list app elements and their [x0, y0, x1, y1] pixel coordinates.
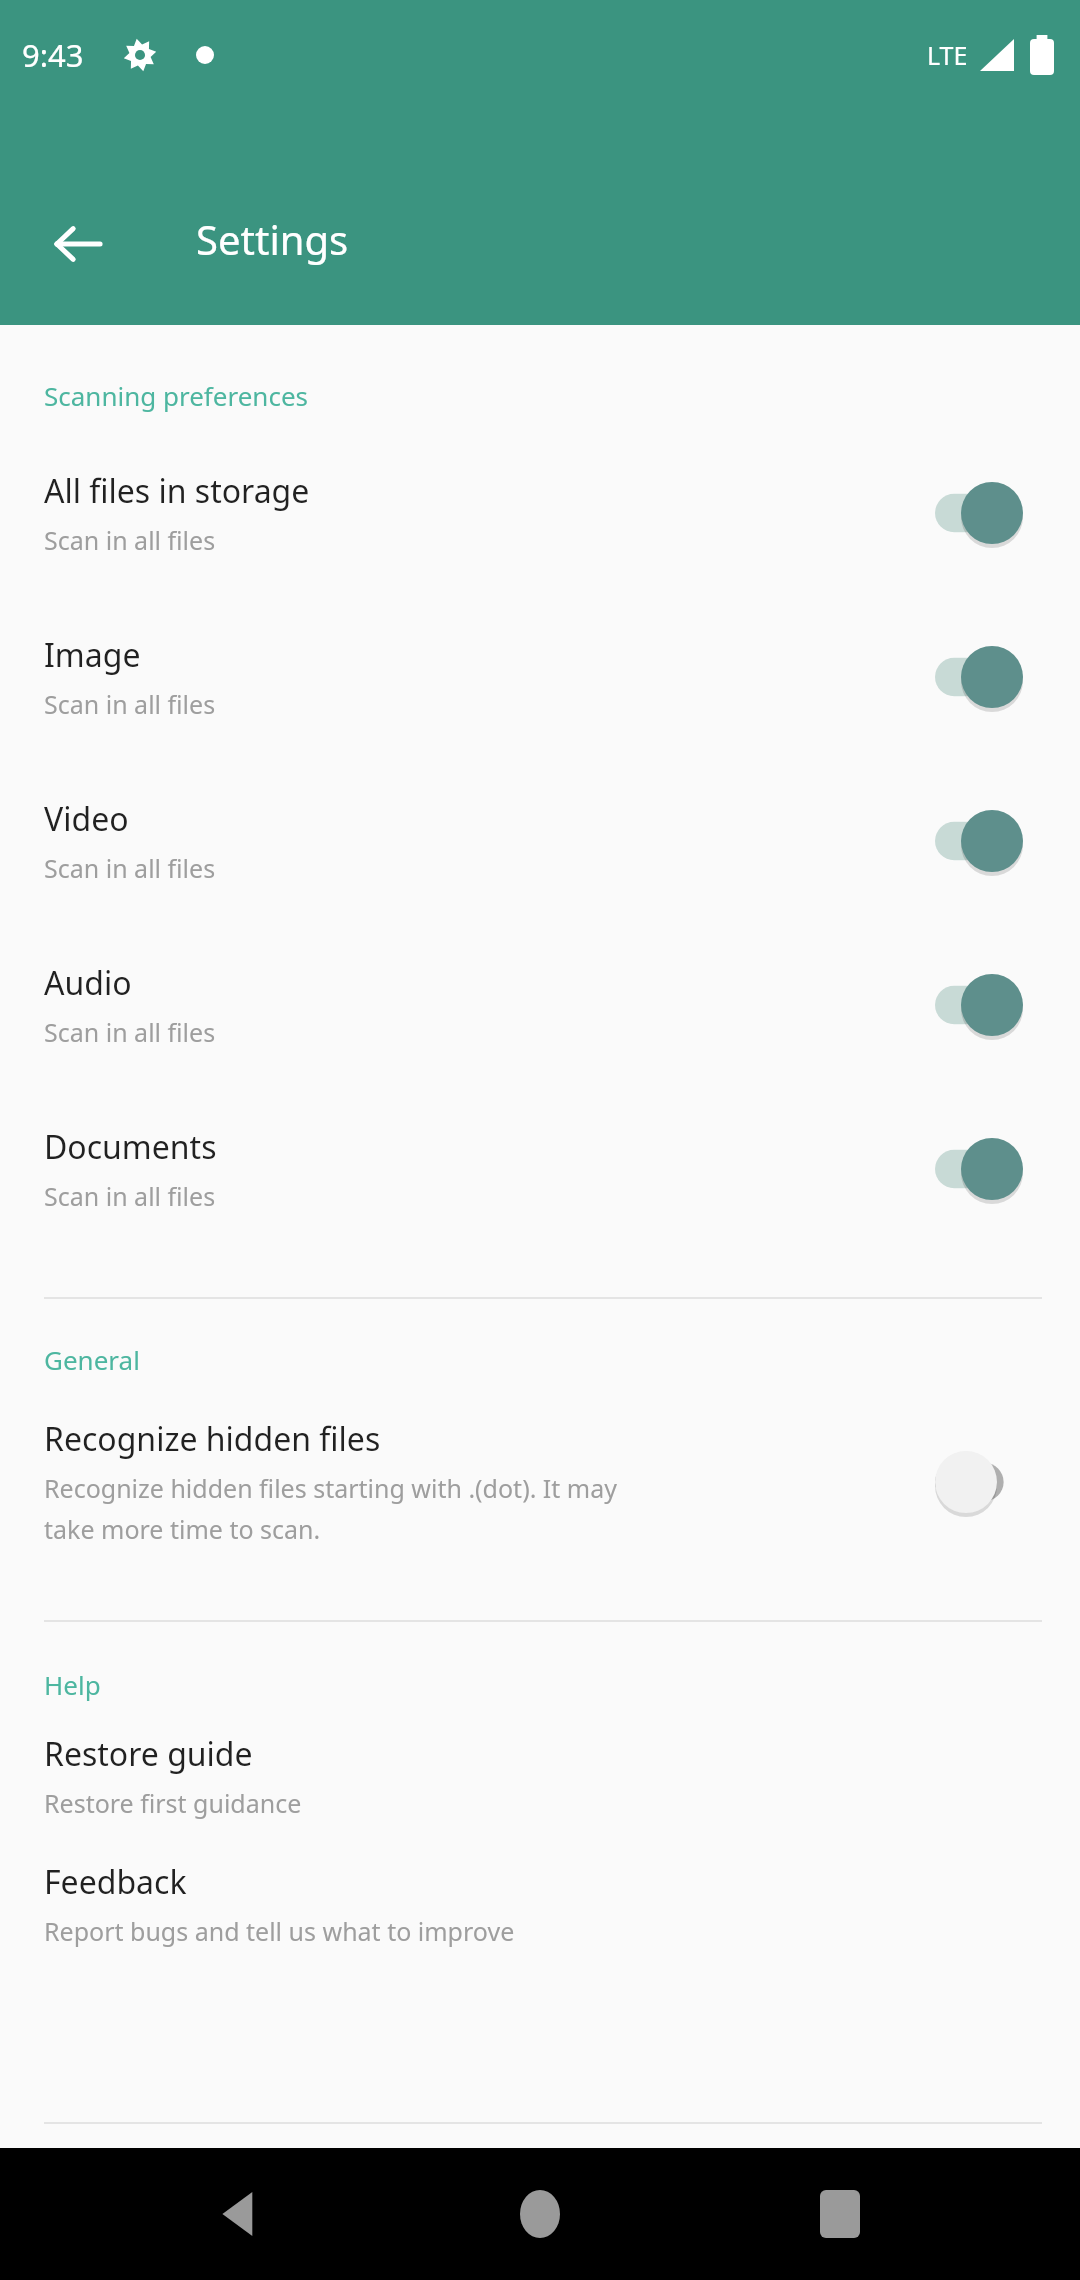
button[interactable]: Home	[480, 2154, 600, 2274]
button[interactable]: Recognize hidden files	[0, 1407, 1080, 1557]
staticText: 9:43	[22, 34, 84, 76]
button[interactable]: On	[934, 965, 1024, 1045]
staticText: Image	[44, 633, 141, 677]
staticText: Scan in all files	[44, 687, 216, 721]
button[interactable]: All files in storage	[0, 443, 1080, 583]
staticText: LTE	[927, 38, 968, 72]
button[interactable]: On	[934, 637, 1024, 717]
button[interactable]: On	[934, 801, 1024, 881]
staticText: Help	[44, 1667, 101, 1702]
button[interactable]: Video	[0, 771, 1080, 911]
staticText: Report bugs and tell us what to improve	[44, 1914, 515, 1948]
button[interactable]: Restore guide	[0, 1732, 1080, 1860]
button[interactable]: Image	[0, 607, 1080, 747]
button[interactable]: Audio	[0, 935, 1080, 1075]
button[interactable]: On	[934, 1129, 1024, 1209]
staticText: Scan in all files	[44, 523, 216, 557]
staticText: Audio	[44, 961, 132, 1005]
button[interactable]: Feedback	[0, 1860, 1080, 1988]
staticText: Recognize hidden files	[44, 1417, 381, 1461]
staticText: Recognize hidden files starting with .(d…	[44, 1471, 617, 1547]
staticText: Feedback	[44, 1860, 187, 1904]
staticText: Scanning preferences	[44, 378, 309, 413]
staticText: Restore first guidance	[44, 1786, 302, 1820]
button[interactable]: Back	[180, 2154, 300, 2274]
staticText: General	[44, 1342, 140, 1377]
staticText: Scan in all files	[44, 1179, 216, 1213]
staticText: Settings	[196, 212, 349, 266]
button[interactable]: Recents	[780, 2154, 900, 2274]
staticText: Scan in all files	[44, 851, 216, 885]
staticText: All files in storage	[44, 469, 310, 513]
staticText: Restore guide	[44, 1732, 253, 1776]
button[interactable]: Documents	[0, 1099, 1080, 1239]
staticText: Scan in all files	[44, 1015, 216, 1049]
staticText: Video	[44, 797, 129, 841]
button[interactable]: Back	[32, 198, 124, 290]
button[interactable]: On	[934, 473, 1024, 553]
button[interactable]: Off	[934, 1442, 1024, 1522]
staticText: Documents	[44, 1125, 217, 1169]
